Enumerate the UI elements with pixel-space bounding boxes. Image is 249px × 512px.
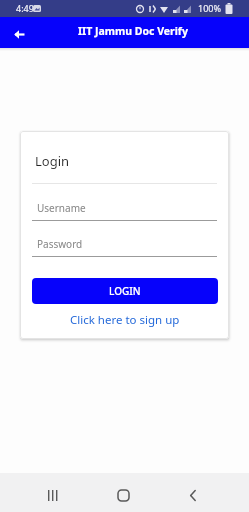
- staticText: Username: [37, 201, 86, 215]
- button[interactable]: [109, 481, 137, 509]
- staticText: Login: [35, 152, 70, 170]
- button[interactable]: Username: [32, 193, 217, 221]
- staticText: IIT Jammu Doc Verify: [78, 24, 188, 38]
- staticText: 100%: [198, 2, 221, 14]
- button[interactable]: Click here to sign up: [20, 310, 229, 330]
- staticText: Click here to sign up: [70, 312, 180, 328]
- button[interactable]: Password: [32, 229, 217, 257]
- staticText: 4:49: [16, 2, 34, 14]
- button[interactable]: LOGIN: [32, 278, 218, 304]
- staticText: Password: [37, 237, 83, 251]
- button[interactable]: [6, 21, 32, 47]
- button[interactable]: [39, 481, 67, 509]
- button[interactable]: [179, 481, 207, 509]
- staticText: LOGIN: [109, 284, 141, 298]
